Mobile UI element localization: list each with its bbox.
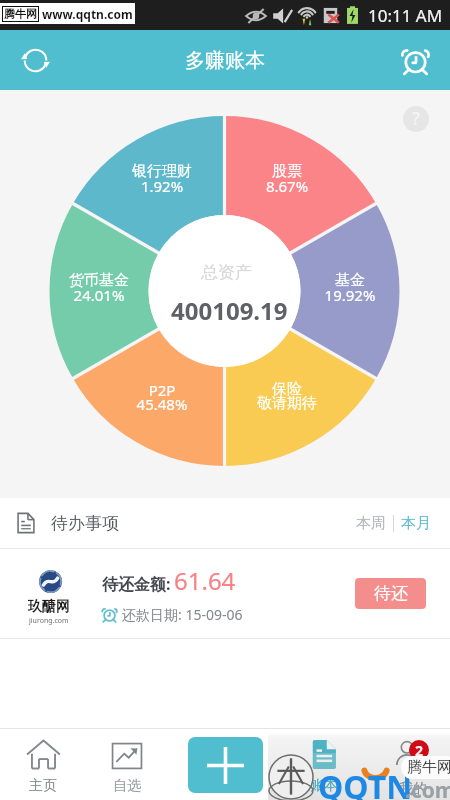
staticText: jiurong.com <box>29 616 69 625</box>
button[interactable]: Add <box>188 737 263 793</box>
staticText: 61.64 <box>174 564 236 597</box>
button[interactable]: 待还 <box>355 578 426 609</box>
button[interactable]: 账本 <box>292 730 356 798</box>
staticText: 10:11 AM <box>368 4 443 27</box>
staticText: 自选 <box>113 777 141 795</box>
staticText: 腾牛网 <box>407 758 450 777</box>
button[interactable]: 玖醣网 <box>0 549 450 638</box>
button[interactable]: Alarm <box>394 39 436 81</box>
staticText: 总资产 <box>201 262 252 283</box>
staticText: 主页 <box>29 777 57 795</box>
button[interactable]: 主页 <box>11 730 75 798</box>
staticText: 基金 <box>295 271 405 290</box>
staticText: 待还 <box>374 583 408 604</box>
staticText: P2P <box>107 380 217 400</box>
staticText: 19.92% <box>295 285 405 305</box>
staticText: 2 <box>415 741 424 760</box>
staticText: 本周 <box>356 514 386 533</box>
staticText: 本月 <box>401 514 431 533</box>
staticText: 待还金额: <box>102 573 171 595</box>
staticText: www.qqtn.com <box>42 6 133 22</box>
button[interactable]: Help <box>403 106 429 132</box>
staticText: 敬请期待 <box>232 394 342 413</box>
button[interactable]: 本月 <box>394 509 438 538</box>
staticText: QQTN <box>318 765 413 800</box>
staticText: 待办事项 <box>51 513 119 534</box>
staticText: 腾牛网 <box>4 7 37 21</box>
button[interactable]: 本周 <box>349 509 393 538</box>
staticText: .com <box>405 776 450 800</box>
staticText: 1.92% <box>107 176 217 196</box>
staticText: 8.67% <box>232 176 342 196</box>
staticText: 保险 <box>232 380 342 399</box>
staticText: 我的 <box>399 780 427 798</box>
button[interactable]: 2 <box>386 732 442 798</box>
staticText: 多赚账本 <box>185 48 265 73</box>
staticText: 24.01% <box>44 285 154 305</box>
staticText: 45.48% <box>107 394 217 414</box>
staticText: 银行理财 <box>107 162 217 181</box>
staticText: 账本 <box>310 777 338 795</box>
staticText: ? <box>412 106 420 131</box>
staticText: 股票 <box>232 162 342 181</box>
staticText: 货币基金 <box>44 271 154 290</box>
staticText: 玖醣网 <box>28 598 70 616</box>
button[interactable]: 自选 <box>95 730 159 798</box>
staticText: 还款日期: 15-09-06 <box>122 605 243 624</box>
button[interactable]: Refresh <box>14 39 56 81</box>
staticText: 400109.19 <box>171 294 288 327</box>
